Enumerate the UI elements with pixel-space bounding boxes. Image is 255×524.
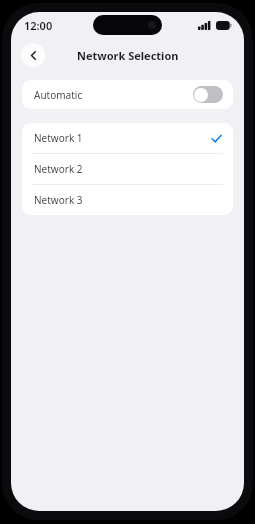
button[interactable]: Back: [21, 43, 45, 67]
button[interactable]: Network 3: [22, 185, 233, 215]
staticText: Network 1: [34, 131, 83, 145]
button[interactable]: Network 1: [22, 123, 233, 153]
staticText: Network 2: [34, 162, 83, 176]
staticText: Automatic: [34, 88, 83, 102]
button[interactable]: Automatic: [22, 80, 233, 109]
staticText: Network 3: [34, 193, 83, 207]
staticText: 12:00: [24, 18, 53, 33]
staticText: Network Selection: [77, 48, 179, 63]
button[interactable]: Automatic toggle: [193, 86, 223, 103]
button[interactable]: Network 2: [22, 154, 233, 184]
